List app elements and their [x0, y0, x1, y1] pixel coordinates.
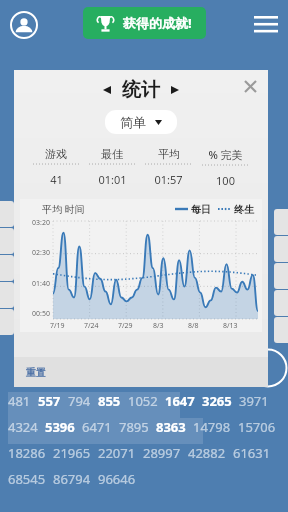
staticText: 1647: [165, 392, 195, 410]
staticText: 最佳: [101, 147, 123, 161]
button[interactable]: Close: [238, 74, 262, 98]
staticText: 7/19: [50, 321, 65, 331]
staticText: 96646: [98, 470, 136, 488]
button[interactable]: 简单: [105, 110, 177, 134]
staticText: 21965: [53, 444, 91, 462]
button[interactable]: [0, 309, 14, 335]
staticText: 8/8: [188, 321, 199, 331]
staticText: 6471: [82, 418, 112, 436]
button[interactable]: [274, 209, 288, 235]
staticText: 15706: [238, 418, 276, 436]
button[interactable]: [0, 201, 14, 227]
button[interactable]: Profile: [10, 11, 38, 39]
staticText: 4324: [8, 418, 38, 436]
staticText: 统计: [122, 78, 160, 102]
staticText: 每日: [191, 203, 211, 216]
staticText: 855: [98, 392, 121, 410]
other: Action: [248, 348, 288, 388]
staticText: 获得的成就!: [123, 14, 192, 32]
staticText: 终生: [234, 203, 254, 216]
button[interactable]: Next: [166, 81, 184, 99]
staticText: 3971: [239, 392, 269, 410]
staticText: 1052: [128, 392, 158, 410]
staticText: 7/29: [118, 321, 133, 331]
staticText: 简单: [120, 114, 146, 130]
button[interactable]: [274, 263, 288, 289]
staticText: 61631: [233, 444, 271, 462]
button[interactable]: [0, 282, 14, 308]
staticText: 14798: [193, 418, 231, 436]
staticText: 游戏: [45, 147, 67, 161]
button[interactable]: [0, 255, 14, 281]
staticText: 794: [68, 392, 91, 410]
staticText: 00:50: [32, 309, 50, 319]
staticText: 平均: [158, 147, 180, 161]
button[interactable]: 重置: [26, 366, 46, 379]
staticText: 18286: [8, 444, 46, 462]
button[interactable]: Menu: [254, 16, 278, 34]
staticText: 01:57: [154, 172, 183, 187]
staticText: 01:40: [32, 279, 50, 289]
staticText: 02:30: [32, 248, 50, 258]
staticText: 5396: [45, 418, 75, 436]
staticText: 7895: [119, 418, 149, 436]
staticText: 86794: [53, 470, 91, 488]
staticText: 8363: [156, 418, 186, 436]
button[interactable]: Previous: [98, 81, 116, 99]
staticText: 68545: [8, 470, 46, 488]
staticText: 7/24: [84, 321, 99, 331]
staticText: 42882: [188, 444, 226, 462]
staticText: 重置: [26, 366, 46, 379]
staticText: 41: [50, 172, 63, 187]
staticText: 100: [216, 173, 235, 188]
staticText: 22071: [98, 444, 136, 462]
staticText: 03:20: [32, 218, 50, 228]
staticText: 3265: [202, 392, 232, 410]
staticText: 01:01: [98, 172, 127, 187]
button[interactable]: [274, 290, 288, 316]
button[interactable]: [274, 317, 288, 343]
staticText: 8/3: [153, 321, 164, 331]
staticText: % 完美: [208, 147, 243, 162]
staticText: 平均 时间: [42, 202, 85, 216]
button[interactable]: [274, 236, 288, 262]
staticText: 28997: [143, 444, 181, 462]
button[interactable]: [0, 228, 14, 254]
button[interactable]: 获得的成就!: [83, 7, 206, 39]
staticText: 8/13: [223, 321, 238, 331]
staticText: 557: [38, 392, 61, 410]
staticText: 481: [8, 392, 31, 410]
